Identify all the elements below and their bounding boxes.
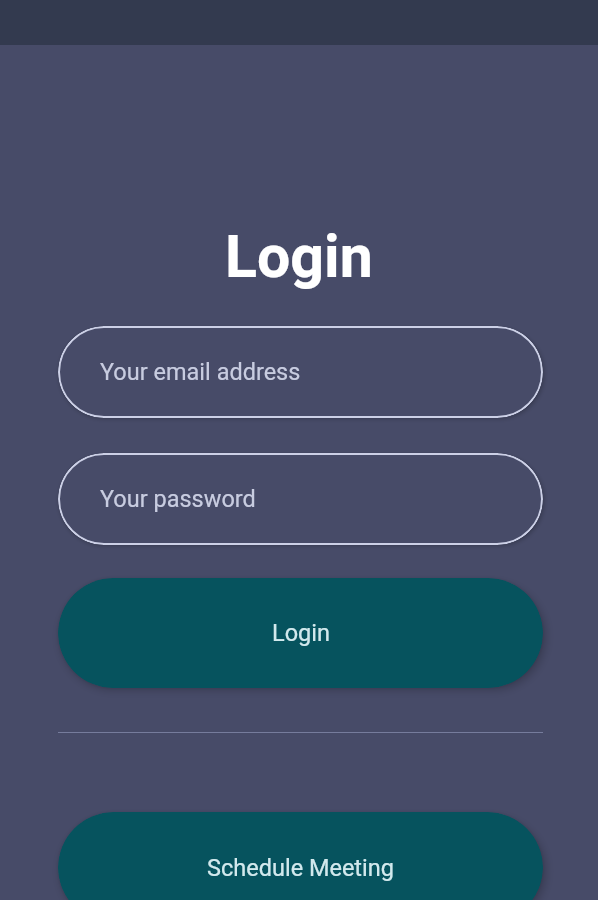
staticText: Schedule Meeting xyxy=(207,854,394,882)
staticText: Login xyxy=(272,619,330,647)
staticText: Your password xyxy=(100,485,256,513)
button[interactable]: Your password xyxy=(58,453,543,545)
button[interactable]: Your email address xyxy=(58,326,543,418)
button[interactable]: Schedule Meeting xyxy=(58,812,543,900)
staticText: Your email address xyxy=(100,358,301,386)
staticText: Login xyxy=(225,222,373,291)
button[interactable]: Login xyxy=(58,578,543,688)
